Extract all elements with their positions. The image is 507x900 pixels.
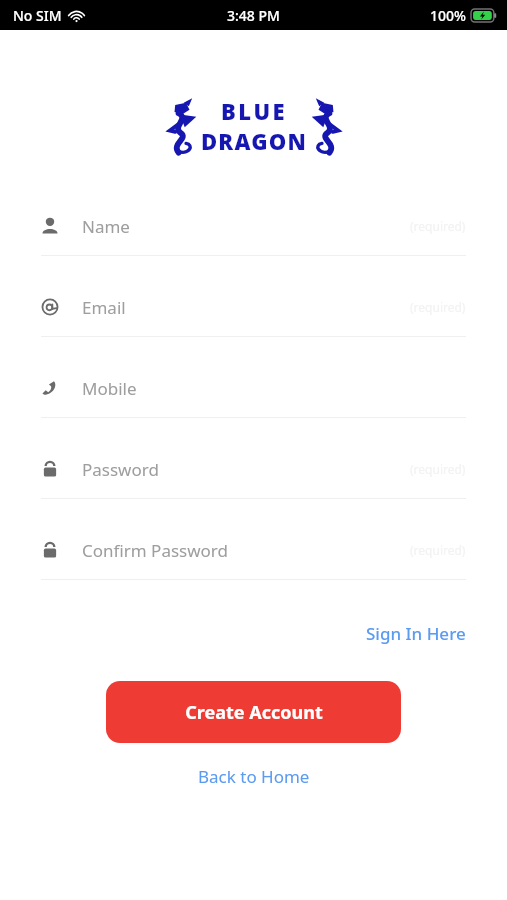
staticText: BLUE: [221, 96, 288, 126]
button[interactable]: Password: [0, 440, 507, 521]
staticText: Name: [82, 215, 130, 238]
staticText: (required): [410, 542, 466, 558]
other: Mobile: [41, 379, 59, 397]
staticText: Create Account: [185, 700, 323, 725]
staticText: Sign In Here: [366, 622, 466, 645]
button[interactable]: Create Account: [106, 681, 401, 743]
button[interactable]: Password: [0, 521, 507, 602]
staticText: (required): [410, 461, 466, 477]
staticText: 100%: [430, 6, 466, 25]
staticText: Password: [82, 458, 159, 481]
staticText: (required): [410, 218, 466, 234]
staticText: Email: [82, 296, 126, 319]
other: Name: [41, 217, 59, 235]
staticText: DRAGON: [201, 126, 307, 156]
staticText: No SIM: [13, 6, 62, 25]
staticText: Back to Home: [198, 765, 310, 788]
staticText: Confirm Password: [82, 539, 228, 562]
other: Password: [41, 541, 59, 559]
staticText: 3:48 PM: [227, 6, 280, 25]
other: Email: [41, 298, 59, 316]
staticText: Mobile: [82, 377, 137, 400]
other: Password: [41, 460, 59, 478]
button[interactable]: Back to Home: [178, 757, 330, 796]
button[interactable]: Sign In Here: [325, 616, 507, 651]
button[interactable]: Name: [0, 197, 507, 278]
staticText: (required): [410, 299, 466, 315]
button[interactable]: Mobile: [0, 359, 507, 440]
button[interactable]: Email: [0, 278, 507, 359]
